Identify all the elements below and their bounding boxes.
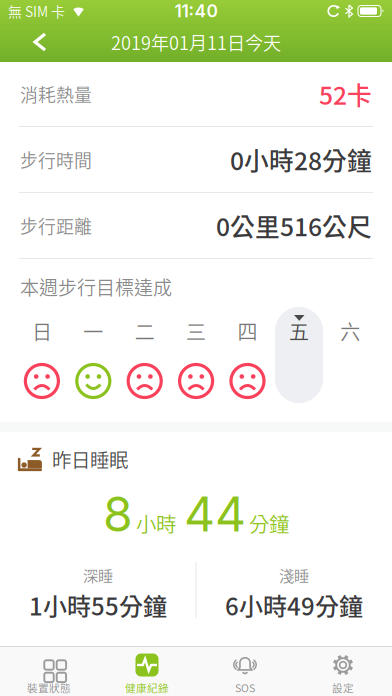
staticText: 一 [83,316,103,345]
staticText: 深睡 [83,564,113,586]
staticText: 昨日睡眠 [52,445,128,473]
staticText: 步行時間 [20,147,92,172]
button[interactable]: 設定 [294,647,392,696]
staticText: 步行距離 [20,213,92,238]
staticText: 2019年01月11日今天 [111,29,281,55]
button[interactable]: 星期日 [16,320,68,342]
button[interactable]: 星期五 [273,320,325,342]
staticText: 日 [32,316,52,345]
button[interactable]: 星期一 [68,320,119,342]
staticText: 0小時28分鐘 [230,142,372,177]
staticText: 1小時55分鐘 [29,588,167,622]
staticText: 52卡 [319,76,372,112]
staticText: 四 [237,316,257,345]
button[interactable]: 裝置狀態 [0,647,98,696]
staticText: 分鐘 [249,508,289,538]
button[interactable]: 星期六 [325,320,376,342]
staticText: 0公里516公尺 [216,208,372,243]
staticText: 消耗熱量 [20,81,92,107]
button[interactable]: 星期三 [170,320,222,342]
staticText: 44 [184,485,246,543]
button[interactable]: 星期四 [222,320,273,342]
button[interactable]: SOS [196,647,294,696]
staticText: SOS [235,680,255,695]
staticText: 三 [186,316,206,345]
staticText: 二 [135,316,155,345]
button[interactable]: 健康紀錄 [98,647,196,696]
staticText: 小時 [136,508,176,538]
staticText: 設定 [332,680,354,695]
button[interactable]: 星期二 [119,320,170,342]
staticText: 本週步行目標達成 [20,273,172,301]
staticText: 六 [340,316,360,345]
staticText: 健康紀錄 [125,680,169,695]
staticText: 無 SIM 卡 [8,1,65,21]
staticText: 6小時49分鐘 [225,588,363,622]
staticText: 11:40 [174,0,217,21]
staticText: 8 [103,485,133,543]
staticText: 裝置狀態 [27,680,71,695]
staticText: 五 [289,316,309,345]
staticText: 淺睡 [279,564,309,586]
button[interactable]: Back [20,22,64,62]
